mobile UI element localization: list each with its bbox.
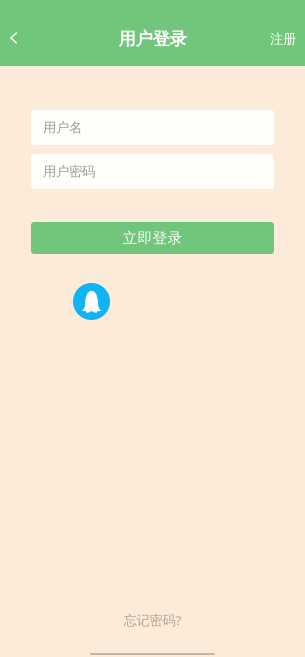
staticText: 用户登录 [118,28,186,50]
button[interactable]: 用户密码 [31,154,274,189]
button[interactable]: Back [1,26,27,52]
staticText: 用户名 [43,119,82,136]
button[interactable]: 注册 [270,26,296,52]
button[interactable]: 立即登录 [31,222,274,254]
button[interactable]: 用户名 [31,110,274,145]
button[interactable]: 忘记密码? [115,611,189,633]
button[interactable]: QQ login [73,283,110,320]
staticText: 注册 [270,31,296,47]
staticText: 忘记密码? [123,611,181,629]
staticText: 立即登录 [122,229,182,247]
staticText: 用户密码 [43,163,95,180]
